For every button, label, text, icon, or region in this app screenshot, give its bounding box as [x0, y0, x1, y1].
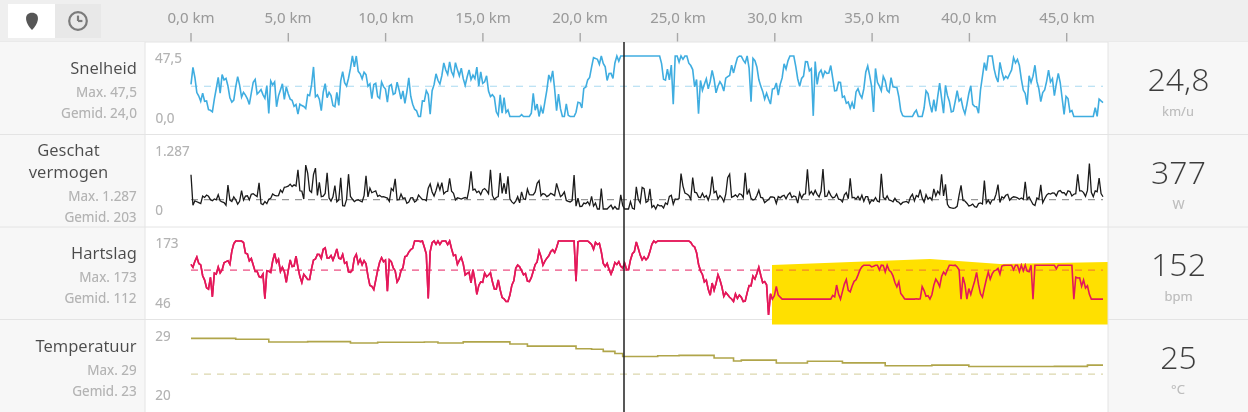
- button[interactable]: 377: [1108, 135, 1248, 228]
- staticText: 24,8: [1147, 57, 1210, 101]
- button[interactable]: 24,8: [1108, 42, 1248, 135]
- button[interactable]: 25: [1108, 320, 1248, 412]
- staticText: 30,0 km: [747, 7, 803, 27]
- staticText: 5,0 km: [264, 7, 312, 27]
- staticText: 0,0: [155, 109, 175, 127]
- staticText: Gemid. 112: [64, 289, 137, 307]
- staticText: 377: [1151, 150, 1206, 194]
- staticText: 173: [155, 234, 179, 252]
- button[interactable]: 152: [1108, 227, 1248, 320]
- staticText: km/u: [1162, 102, 1194, 120]
- staticText: 0,0 km: [167, 7, 215, 27]
- button[interactable]: Geschat vermogen: [0, 135, 145, 228]
- staticText: Hartslag: [71, 241, 137, 263]
- staticText: °C: [1171, 380, 1185, 398]
- button[interactable]: Distance axis: [8, 4, 55, 38]
- staticText: 35,0 km: [844, 7, 900, 27]
- staticText: W: [1172, 195, 1185, 213]
- staticText: Max. 173: [79, 268, 137, 286]
- staticText: 152: [1151, 242, 1206, 286]
- button[interactable]: Time axis: [55, 4, 101, 38]
- staticText: Max. 47,5: [76, 83, 137, 101]
- staticText: 47,5: [155, 49, 182, 67]
- staticText: Gemid. 203: [64, 208, 137, 226]
- staticText: 25,0 km: [650, 7, 706, 27]
- staticText: Gemid. 23: [72, 382, 137, 400]
- staticText: Geschat vermogen: [0, 138, 137, 182]
- staticText: Snelheid: [70, 56, 137, 78]
- staticText: 1.287: [155, 142, 190, 160]
- staticText: Max. 1.287: [68, 187, 137, 205]
- staticText: 0: [155, 201, 163, 219]
- staticText: 46: [155, 294, 171, 312]
- staticText: 25: [1160, 335, 1197, 379]
- staticText: 15,0 km: [455, 7, 511, 27]
- staticText: Gemid. 24,0: [61, 104, 137, 122]
- staticText: 45,0 km: [1039, 7, 1095, 27]
- staticText: 40,0 km: [941, 7, 997, 27]
- staticText: 20,0 km: [552, 7, 608, 27]
- staticText: Max. 29: [87, 361, 137, 379]
- button[interactable]: Temperatuur: [0, 320, 145, 412]
- button[interactable]: Hartslag: [0, 227, 145, 320]
- staticText: 29: [155, 327, 171, 345]
- staticText: 10,0 km: [358, 7, 414, 27]
- staticText: bpm: [1164, 287, 1193, 305]
- staticText: Temperatuur: [35, 334, 137, 356]
- button[interactable]: Snelheid: [0, 42, 145, 135]
- staticText: 20: [155, 386, 171, 404]
